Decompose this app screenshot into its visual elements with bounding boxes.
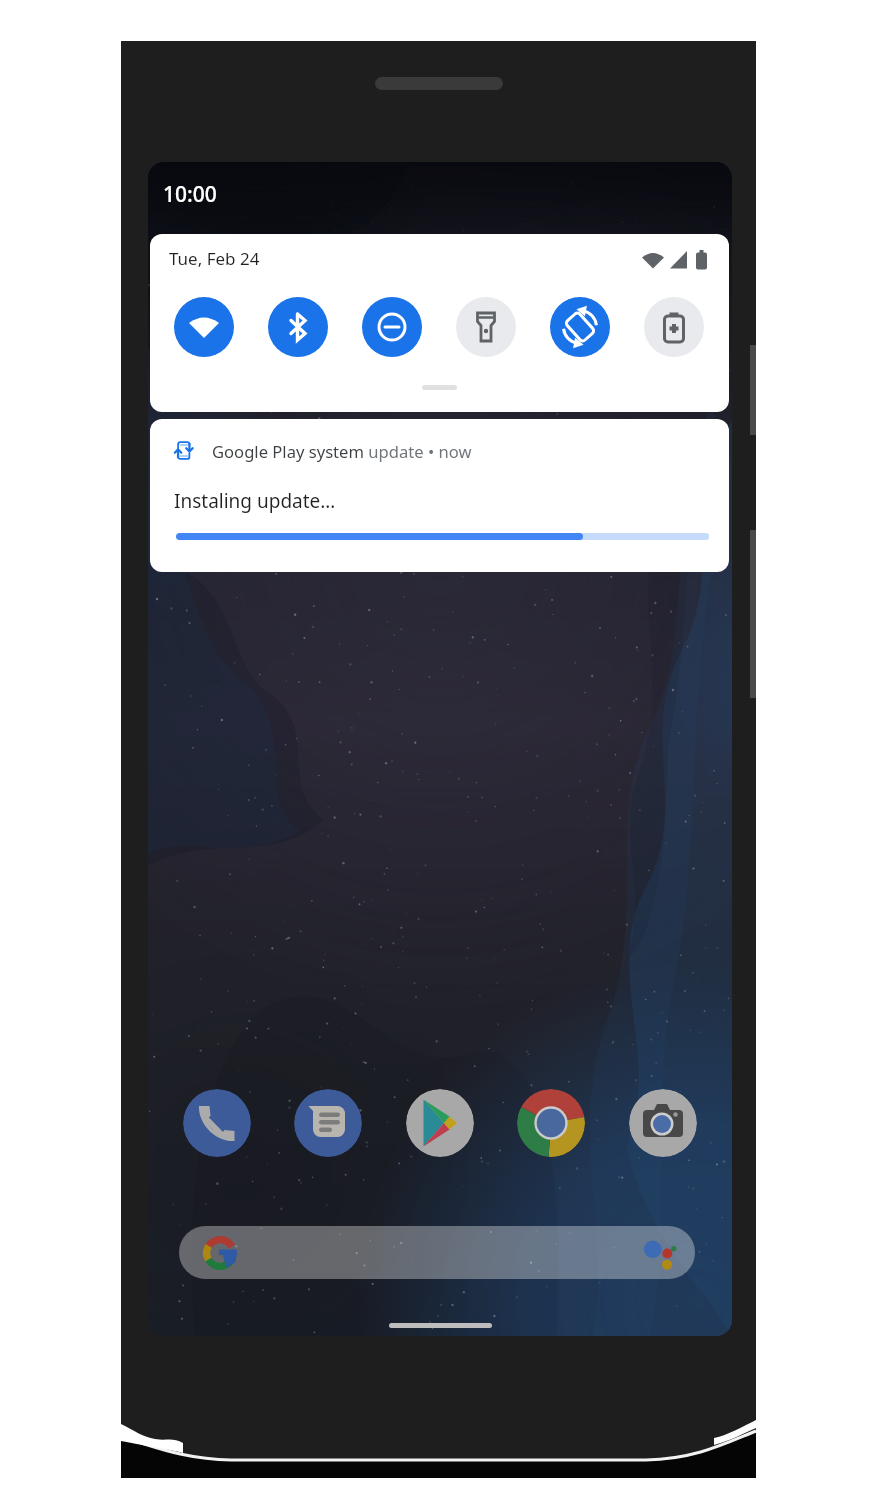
staticText: Google Play system xyxy=(212,440,364,463)
button[interactable]: Messages xyxy=(294,1089,362,1157)
button[interactable]: Camera xyxy=(629,1089,697,1157)
button[interactable]: Bluetooth xyxy=(268,297,328,357)
staticText: Tue, Feb 24 xyxy=(169,247,260,270)
staticText: 10:00 xyxy=(163,180,217,209)
button[interactable]: Wi-Fi xyxy=(174,297,234,357)
button[interactable]: Battery Saver xyxy=(644,297,704,357)
button[interactable]: Auto rotate xyxy=(550,297,610,357)
button[interactable]: Flashlight xyxy=(456,297,516,357)
button[interactable]: Google Play system xyxy=(150,419,729,572)
staticText: update • now xyxy=(364,440,472,463)
button[interactable]: Do Not Disturb xyxy=(362,297,422,357)
button[interactable]: Search xyxy=(179,1226,695,1279)
button[interactable]: Phone xyxy=(183,1089,251,1157)
staticText: Instaling update… xyxy=(174,488,336,514)
button[interactable]: Chrome xyxy=(517,1089,585,1157)
button[interactable]: Play Store xyxy=(406,1089,474,1157)
